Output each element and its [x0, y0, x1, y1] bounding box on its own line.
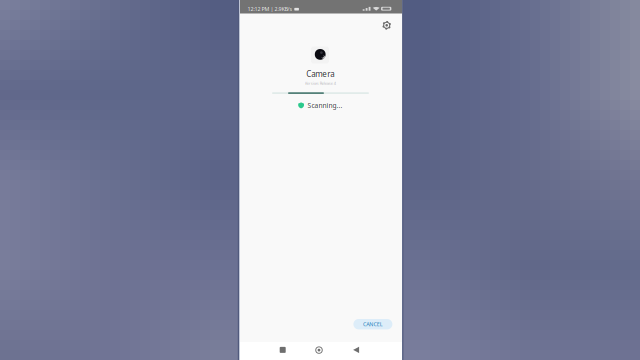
button[interactable]: CANCEL [353, 319, 392, 329]
staticText: CANCEL [363, 321, 383, 328]
staticText: Scanning... [307, 101, 342, 110]
staticText: Version: Release 4 [305, 80, 336, 86]
button[interactable]: Recent apps [266, 341, 300, 359]
button[interactable]: Home [302, 341, 336, 359]
button[interactable]: Settings [379, 17, 395, 33]
staticText: Camera [306, 68, 334, 79]
staticText: 12:12 PM | 2.9KB/s [247, 5, 292, 13]
button[interactable]: Back [339, 341, 373, 359]
